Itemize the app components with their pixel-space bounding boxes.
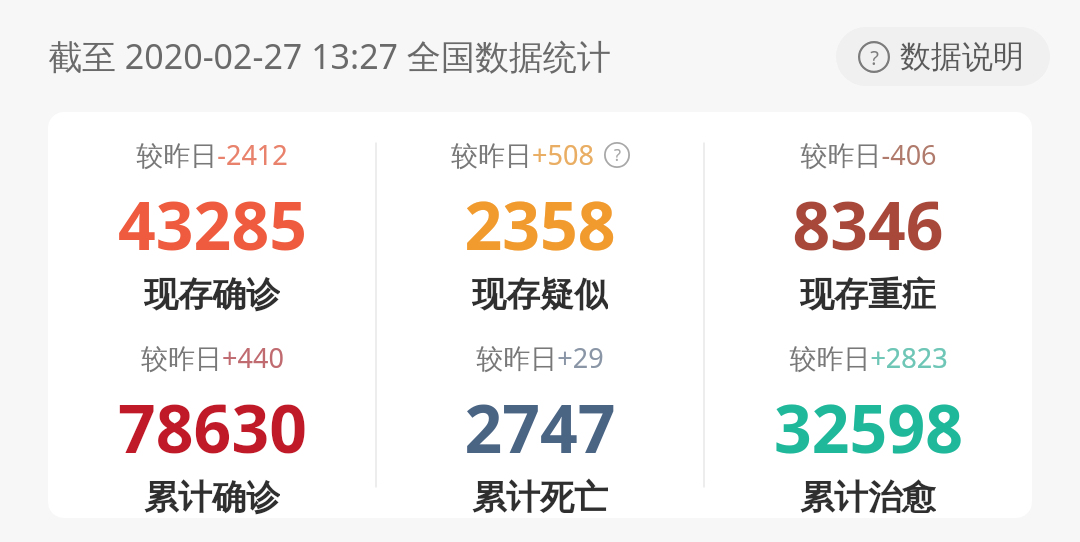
button[interactable]: 较昨日-406 (704, 112, 1032, 315)
button[interactable]: 较昨日+29 (376, 315, 704, 518)
staticText: 较昨日+440 (141, 339, 284, 376)
staticText: 8346 (792, 179, 944, 269)
button[interactable]: 较昨日-2412 (48, 112, 376, 315)
staticText: 43285 (118, 179, 307, 269)
staticText: 78630 (118, 382, 307, 472)
staticText: 截至 2020-02-27 13:27 全国数据统计 (48, 33, 611, 79)
staticText: 现存疑似 (472, 273, 608, 315)
staticText: ? (870, 44, 879, 71)
staticText: 累计确诊 (144, 476, 280, 518)
other: Help (604, 142, 630, 168)
other: Help (858, 41, 890, 73)
staticText: ? (614, 144, 621, 166)
button[interactable]: 较昨日+440 (48, 315, 376, 518)
staticText: 较昨日-2412 (136, 136, 288, 173)
button[interactable]: 较昨日+508 (376, 112, 704, 315)
staticText: 累计治愈 (800, 476, 936, 518)
button[interactable]: 较昨日+2823 (704, 315, 1032, 518)
staticText: 累计死亡 (472, 476, 608, 518)
staticText: 2358 (464, 179, 616, 269)
staticText: 较昨日+508 (451, 136, 594, 173)
staticText: 2747 (464, 382, 616, 472)
staticText: 较昨日-406 (800, 136, 937, 173)
staticText: 数据说明 (900, 37, 1024, 76)
staticText: 现存确诊 (144, 273, 280, 315)
staticText: 现存重症 (800, 273, 936, 315)
staticText: 较昨日+2823 (789, 339, 948, 376)
staticText: 32598 (774, 382, 963, 472)
button[interactable]: Help (836, 27, 1050, 86)
staticText: 较昨日+29 (476, 339, 604, 376)
